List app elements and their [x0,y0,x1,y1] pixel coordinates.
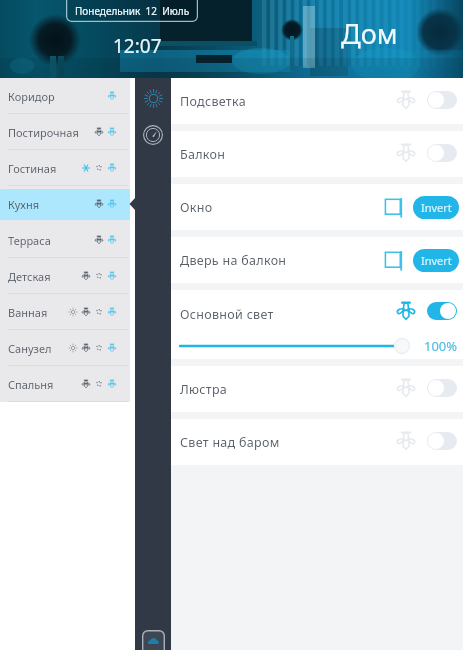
button[interactable]: Toggle [427,91,457,109]
staticText: Кухня [8,197,40,212]
staticText: 100% [424,337,458,355]
button[interactable]: Балкон [171,131,463,177]
button[interactable]: Детская [0,258,130,294]
button[interactable]: Свет над баром [171,419,463,465]
staticText: Ванная [8,305,48,320]
button[interactable]: Invert [413,196,459,219]
button[interactable]: Climate [138,120,168,150]
button[interactable]: Toggle [427,432,457,450]
button[interactable]: Окно [171,184,463,230]
button[interactable]: Люстра [171,366,463,412]
staticText: Терраса [8,233,51,248]
staticText: Свет над баром [180,434,280,451]
staticText: Подсветка [180,93,246,110]
staticText: Invert [421,200,452,215]
button[interactable]: Постирочная [0,114,130,150]
button[interactable]: Кухня [0,186,130,222]
button[interactable]: Toggle [427,302,457,320]
button[interactable]: Дверь на балкон [171,237,463,283]
staticText: Дверь на балкон [180,252,287,269]
staticText: Детская [8,269,51,284]
staticText: Санузел [8,341,52,356]
staticText: Invert [421,253,452,268]
staticText: Коридор [8,89,55,104]
staticText: Дом [341,15,398,52]
button[interactable]: Коридор [0,78,130,114]
button[interactable]: Основной свет [171,290,463,359]
staticText: Балкон [180,146,226,163]
button[interactable]: Lighting [138,83,168,113]
button[interactable]: Понедельник 12 Июль [66,0,198,22]
staticText: 12:07 [113,33,162,59]
button[interactable]: Терраса [0,222,130,258]
staticText: Постирочная [8,125,79,140]
staticText: Основной свет [180,306,274,323]
staticText: Понедельник 12 Июль [75,4,190,18]
button[interactable]: Спальня [0,366,130,402]
button[interactable]: Toggle [427,144,457,162]
staticText: Спальня [8,377,54,392]
button[interactable]: Toggle [427,379,457,397]
button[interactable]: Подсветка [171,78,463,124]
button[interactable]: Cloud [142,630,165,650]
button[interactable]: Invert [413,249,459,272]
staticText: Люстра [180,381,228,398]
staticText: Гостиная [8,161,57,176]
button[interactable]: Санузел [0,330,130,366]
button[interactable]: Гостиная [0,150,130,186]
button[interactable]: Ванная [0,294,130,330]
staticText: Окно [180,199,213,216]
